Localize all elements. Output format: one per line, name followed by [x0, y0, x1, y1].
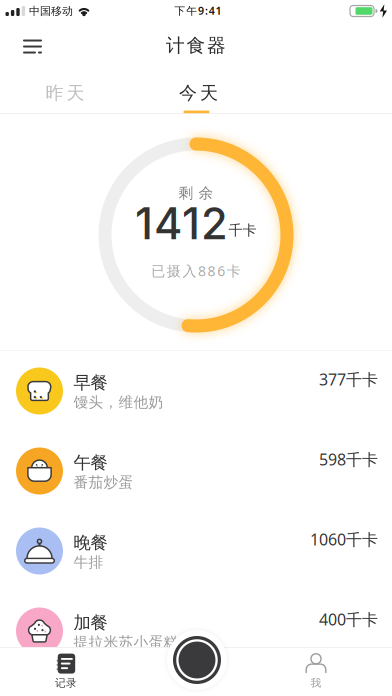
- button[interactable]: 加餐: [0, 591, 392, 671]
- staticText: 1060千卡: [310, 528, 378, 550]
- button[interactable]: 菜单: [11, 22, 55, 66]
- staticText: 400千卡: [319, 608, 378, 630]
- button[interactable]: 记录: [16, 647, 116, 696]
- staticText: 下午9:41: [174, 3, 221, 18]
- staticText: 馒头，维他奶: [73, 393, 163, 412]
- staticText: 已摄入886卡: [151, 261, 241, 280]
- staticText: 晚餐: [73, 532, 107, 554]
- button[interactable]: 我: [266, 647, 366, 696]
- staticText: 昨天: [45, 82, 84, 104]
- button[interactable]: 午餐: [0, 431, 392, 511]
- staticText: 加餐: [73, 612, 107, 634]
- staticText: 今天: [179, 82, 218, 104]
- staticText: 1412: [135, 197, 228, 250]
- staticText: 377千卡: [319, 368, 378, 390]
- button[interactable]: 早餐: [0, 351, 392, 431]
- staticText: 提拉米苏小蛋糕: [73, 633, 178, 652]
- staticText: 598千卡: [319, 448, 378, 470]
- staticText: 番茄炒蛋: [73, 473, 133, 492]
- staticText: 计食器: [166, 34, 226, 57]
- staticText: 千卡: [229, 222, 257, 239]
- staticText: 牛排: [73, 553, 103, 572]
- staticText: 我: [310, 676, 321, 690]
- button[interactable]: 昨天: [15, 72, 115, 114]
- staticText: 剩余: [178, 184, 213, 202]
- staticText: 早餐: [73, 372, 107, 394]
- button[interactable]: 晚餐: [0, 511, 392, 591]
- staticText: 记录: [55, 676, 77, 690]
- button[interactable]: 拍照记录: [173, 636, 221, 684]
- staticText: 午餐: [73, 452, 107, 474]
- button[interactable]: 今天: [148, 72, 248, 114]
- staticText: 中国移动: [29, 4, 73, 18]
